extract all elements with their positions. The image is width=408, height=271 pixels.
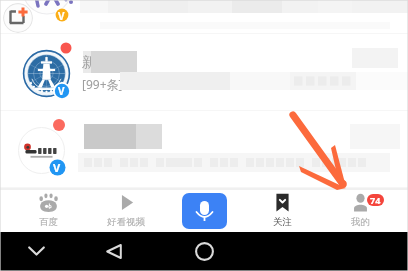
staticText: V bbox=[53, 160, 61, 175]
button[interactable]: 好看视频 bbox=[87, 188, 165, 232]
button[interactable]: 关注 bbox=[243, 188, 321, 232]
button[interactable]: V bbox=[0, 111, 408, 188]
staticText: 新华社 bbox=[82, 54, 124, 72]
staticText: 我的 bbox=[351, 216, 370, 228]
staticText: [99+条] bbox=[82, 76, 123, 92]
button[interactable]: Hide keyboard bbox=[25, 241, 47, 261]
button[interactable]: Voice search bbox=[182, 193, 227, 229]
button[interactable]: Home bbox=[193, 240, 215, 262]
staticText: 关注 bbox=[273, 216, 292, 228]
staticText: V bbox=[58, 84, 65, 98]
staticText: V bbox=[58, 9, 65, 23]
button[interactable]: V bbox=[0, 0, 408, 34]
button[interactable]: Back bbox=[103, 240, 125, 262]
staticText: 百度 bbox=[39, 216, 58, 228]
staticText: 好看视频 bbox=[107, 216, 145, 228]
button[interactable]: 百度 bbox=[9, 188, 87, 232]
staticText: 74 bbox=[370, 194, 381, 206]
button[interactable]: Screenshot bbox=[3, 3, 33, 33]
button[interactable]: 我的 bbox=[321, 188, 399, 232]
button[interactable]: V bbox=[0, 34, 408, 111]
